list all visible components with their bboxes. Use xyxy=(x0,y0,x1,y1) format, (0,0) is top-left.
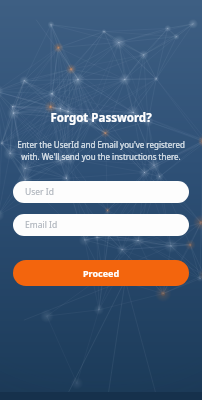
staticText: Enter the UserId and Email you've regist… xyxy=(10,139,192,163)
staticText: Forgot Password? xyxy=(50,110,152,126)
staticText: User Id xyxy=(25,186,54,198)
staticText: Email Id xyxy=(25,219,58,231)
button[interactable]: User Id xyxy=(13,181,189,203)
staticText: Proceed xyxy=(83,267,120,279)
button[interactable]: Email Id xyxy=(13,214,189,236)
button[interactable]: Proceed xyxy=(13,260,189,286)
